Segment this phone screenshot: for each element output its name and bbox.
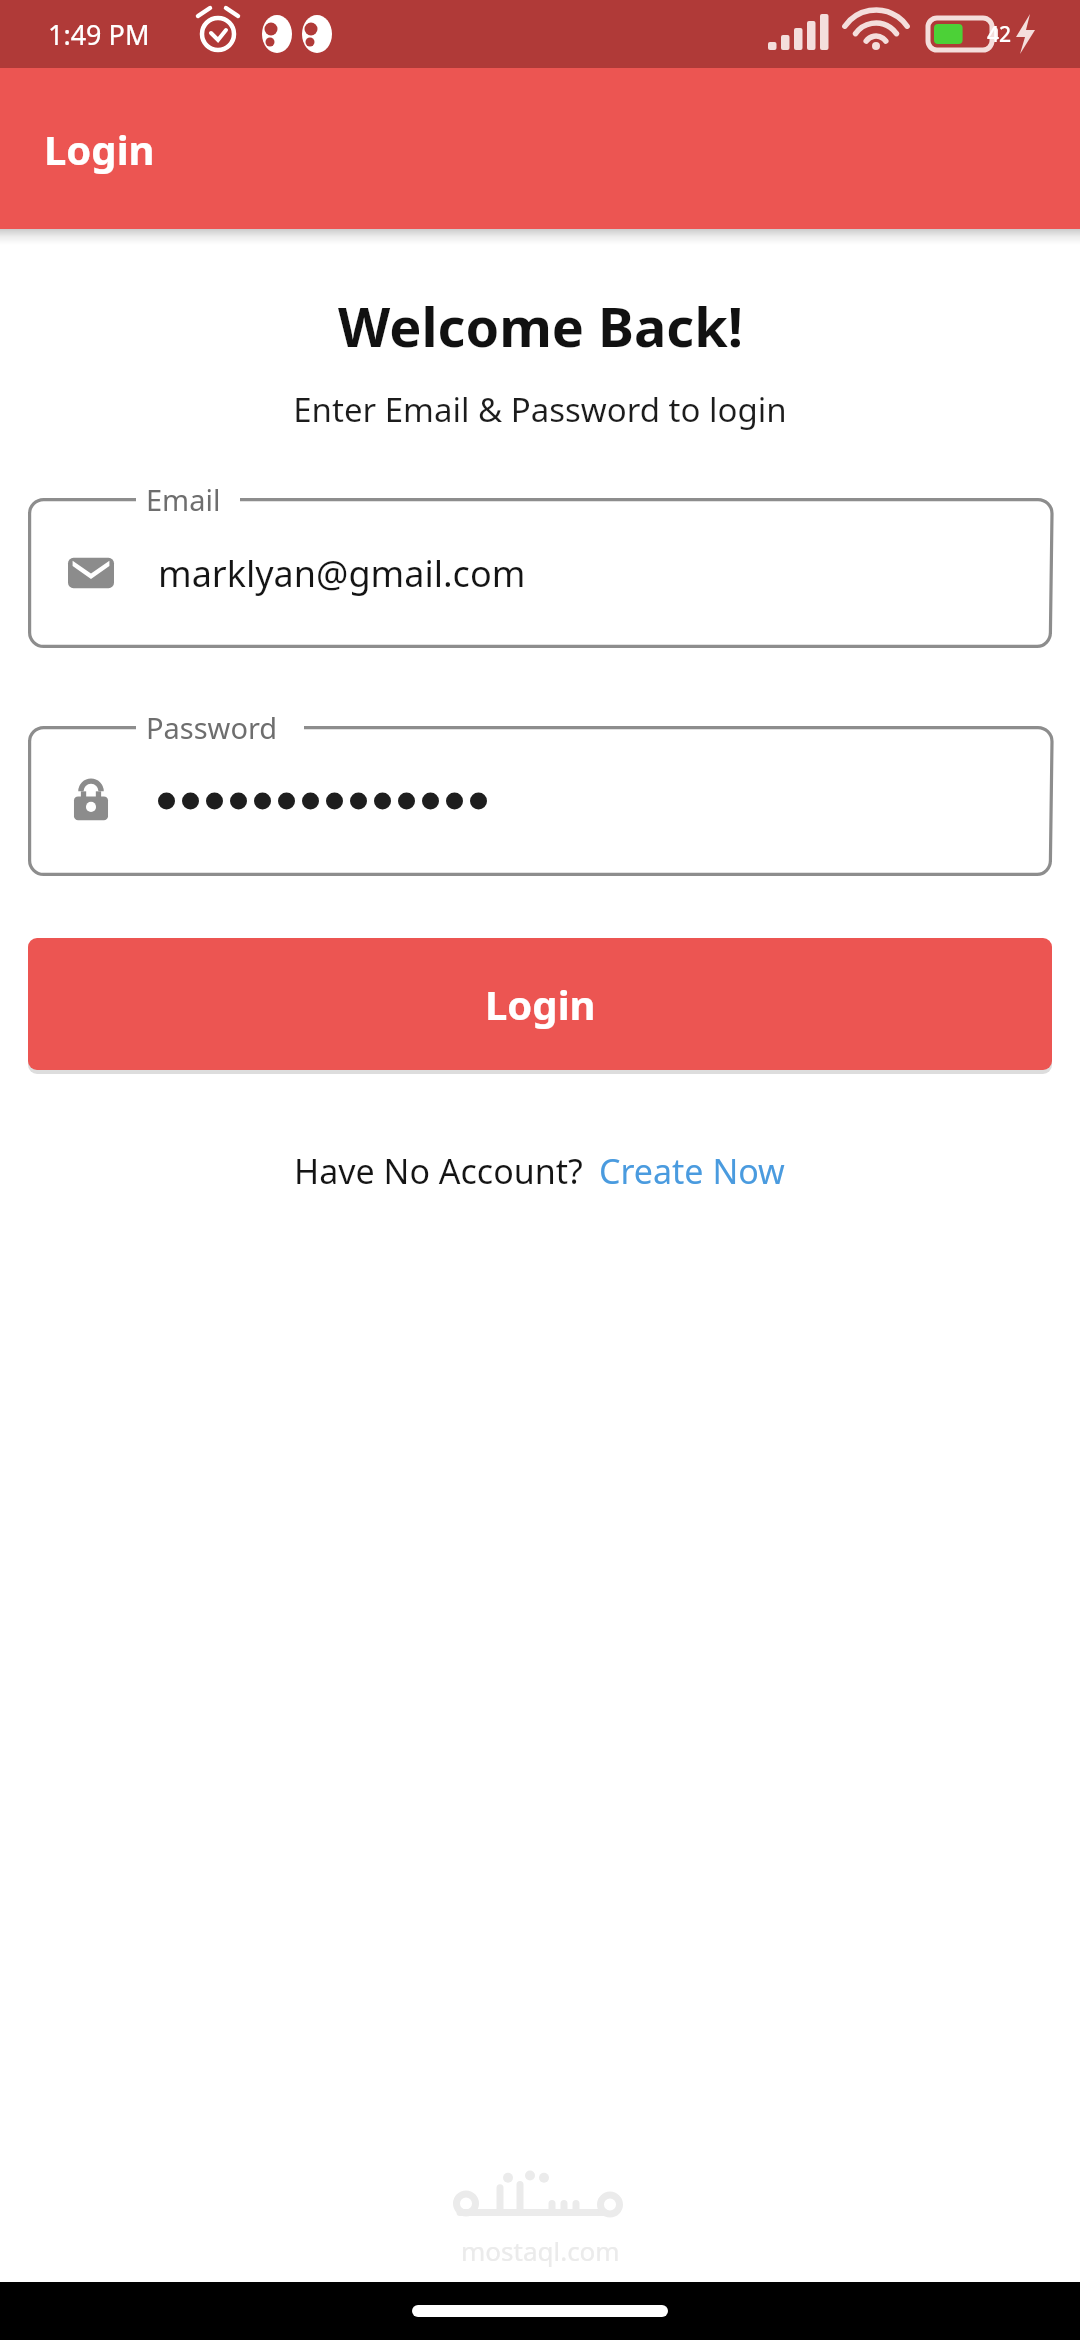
- staticText: 1:49 PM: [48, 16, 150, 53]
- staticText: Have No Account?: [294, 1148, 583, 1194]
- staticText: Password: [146, 708, 278, 747]
- button[interactable]: Login: [28, 938, 1052, 1070]
- staticText: mostaql.com: [461, 2233, 620, 2268]
- staticText: Welcome Back!: [338, 289, 743, 363]
- staticText: Create Now: [599, 1148, 785, 1194]
- button[interactable]: Create Now: [597, 1144, 787, 1198]
- staticText: marklyan@gmail.com: [158, 549, 526, 598]
- button[interactable]: [28, 726, 1052, 876]
- button[interactable]: marklyan@gmail.com: [28, 498, 1052, 648]
- staticText: Login: [485, 977, 596, 1031]
- staticText: Enter Email & Password to login: [293, 387, 787, 432]
- staticText: Login: [44, 122, 155, 176]
- staticText: Email: [146, 480, 221, 519]
- staticText: 42: [987, 20, 1012, 49]
